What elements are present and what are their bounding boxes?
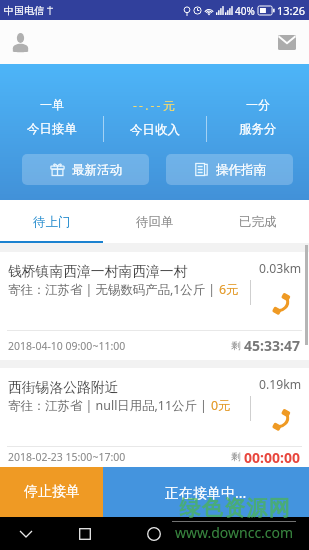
button[interactable]: 操作指南	[166, 154, 293, 185]
staticText: 操作指南	[216, 162, 266, 178]
button[interactable]: Recents	[69, 517, 101, 550]
staticText: 绿色资源网	[179, 495, 290, 521]
staticText: 中国电信	[4, 4, 44, 17]
staticText: 45:33:47	[244, 336, 300, 355]
button[interactable]: 西街锡洛公路附近	[0, 368, 309, 467]
staticText: 最新活动	[72, 162, 122, 178]
button[interactable]: Messages	[271, 26, 303, 58]
staticText: 寄往：江苏省 | 无锡数码产品,1公斤 |	[8, 281, 219, 298]
button[interactable]: 已完成	[206, 200, 309, 243]
button[interactable]: 正在接单中...	[103, 467, 309, 517]
staticText: 服务分	[239, 121, 277, 137]
staticText: 剩	[231, 451, 241, 463]
staticText: 0.03km	[259, 260, 302, 277]
staticText: 剩	[231, 340, 241, 352]
staticText: 西街锡洛公路附近	[8, 379, 119, 396]
button[interactable]: Profile	[4, 26, 36, 58]
staticText: --.--元	[133, 97, 177, 113]
button[interactable]: 最新活动	[22, 154, 149, 185]
staticText: 待上门	[33, 214, 71, 230]
button[interactable]: Back	[10, 517, 42, 550]
staticText: 正在接单中...	[165, 483, 247, 502]
staticText: 13:26	[277, 3, 306, 18]
staticText: 寄往：江苏省 | null日用品,11公斤 |	[8, 397, 211, 414]
button[interactable]: 待回单	[103, 200, 206, 243]
staticText: 今日接单	[27, 121, 77, 137]
button[interactable]: Call	[267, 290, 295, 318]
staticText: 今日收入	[130, 122, 180, 138]
button[interactable]: 停止接单	[0, 467, 103, 517]
staticText: 已完成	[239, 214, 277, 230]
staticText: 一单	[40, 97, 64, 112]
staticText: 待回单	[136, 214, 174, 230]
staticText: 停止接单	[24, 483, 80, 501]
staticText: 6元	[219, 281, 239, 298]
button[interactable]: Call	[267, 406, 295, 434]
staticText: 00:00:00	[244, 448, 300, 467]
staticText: 0.19km	[259, 376, 302, 393]
button[interactable]: 钱桥镇南西漳一村南西漳一村	[0, 252, 309, 360]
staticText: 2018-04-10 09:00~11:00	[8, 339, 126, 353]
staticText: 钱桥镇南西漳一村南西漳一村	[8, 263, 188, 280]
staticText: 40%	[235, 4, 255, 18]
staticText: 2018-02-23 15:00~17:00	[8, 450, 126, 464]
staticText: 0元	[211, 397, 231, 414]
button[interactable]: 待上门	[0, 200, 103, 243]
staticText: www.downcc.com	[175, 523, 294, 542]
staticText: 一分	[246, 97, 270, 112]
button[interactable]: Home	[138, 517, 170, 550]
